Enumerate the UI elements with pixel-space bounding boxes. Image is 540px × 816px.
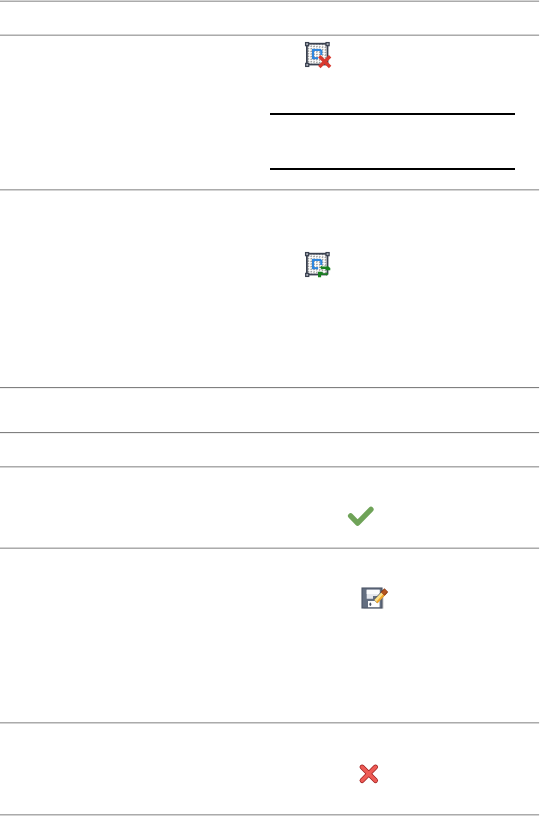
button[interactable]: Row 3 — reload cell xyxy=(0,191,540,387)
button[interactable]: Delete xyxy=(359,764,379,784)
button[interactable]: Accept xyxy=(348,507,375,529)
button[interactable]: Row 8 — removed xyxy=(0,724,540,814)
button[interactable]: Row 1 xyxy=(0,2,540,35)
button[interactable]: Row 2 — image cell xyxy=(0,36,540,189)
button[interactable]: Save edit xyxy=(361,587,387,609)
button[interactable]: Row 6 — accepted xyxy=(0,468,540,547)
button[interactable]: Broken image — remove xyxy=(304,41,332,69)
button[interactable]: Broken image — reload xyxy=(304,251,332,279)
button[interactable]: Row 7 — saved xyxy=(0,549,540,722)
